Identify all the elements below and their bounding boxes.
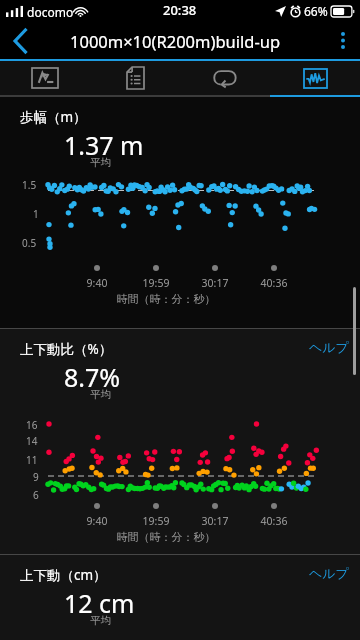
button[interactable]: Charts [270,61,360,95]
button[interactable]: More options [326,22,360,59]
button[interactable]: Details [90,61,180,95]
staticText: 1.37 m [64,128,144,162]
staticText: 時間（時：分：秒） [0,292,346,306]
staticText: 8.7% [64,360,121,394]
staticText: 平均 [90,156,111,169]
staticText: 上下動（cm） [20,566,107,584]
staticText: 14 [26,434,38,448]
staticText: ヘルプ [309,565,349,581]
staticText: 平均 [90,388,111,401]
staticText: docomo [27,4,74,20]
staticText: 9:40 [78,276,116,290]
staticText: 19:59 [137,276,175,290]
staticText: 20:38 [163,1,197,19]
staticText: 16 [26,418,38,432]
staticText: 19:59 [137,514,175,528]
staticText: 66% [304,3,328,19]
staticText: 0.5 [22,236,37,250]
staticText: 40:36 [255,514,293,528]
staticText: 上下動比（%） [20,340,113,358]
staticText: 1.5 [22,178,37,192]
staticText: 歩幅（m） [20,108,87,126]
button[interactable]: Laps [180,61,270,95]
staticText: 1000m×10(R200m)build-up [70,30,281,52]
staticText: 平均 [90,614,111,627]
button[interactable]: ヘルプ [304,557,354,589]
staticText: 6 [33,488,39,502]
staticText: 9:40 [78,514,116,528]
button[interactable]: Back [0,22,40,59]
staticText: 9 [33,470,39,484]
staticText: 1 [33,207,39,221]
staticText: 11 [26,453,38,467]
staticText: 40:36 [255,276,293,290]
staticText: 時間（時：分：秒） [0,530,346,544]
button[interactable]: Map [0,61,90,95]
staticText: 30:17 [196,514,234,528]
staticText: 30:17 [196,276,234,290]
button[interactable]: ヘルプ [304,331,354,363]
staticText: ヘルプ [309,339,349,355]
staticText: 12 cm [64,586,135,620]
